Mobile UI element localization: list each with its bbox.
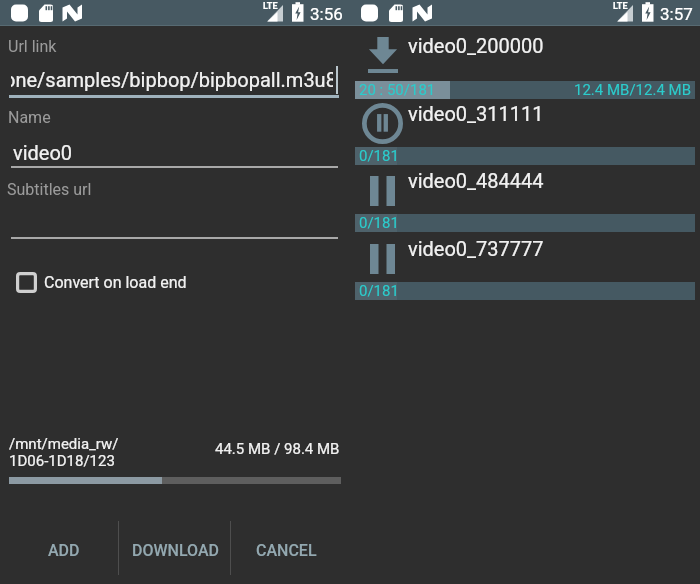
button[interactable]: video0_484444 (350, 159, 700, 193)
staticText: one/samples/bipbop/bipbopall.m3u8 (11, 68, 333, 91)
button[interactable]: video0_200000 (350, 24, 700, 58)
staticText: Name (8, 108, 51, 127)
staticText: LTE (263, 1, 278, 12)
staticText: video0_200000 (408, 34, 544, 57)
staticText: video0 (13, 141, 73, 164)
button[interactable]: video0_737777 (350, 227, 700, 261)
staticText: video0_737777 (408, 237, 544, 260)
button[interactable]: CANCEL (230, 517, 350, 579)
staticText: Convert on load end (44, 273, 187, 292)
staticText: 44.5 MB / 98.4 MB (215, 440, 340, 458)
button[interactable]: video0_311111 (350, 92, 700, 126)
staticText: Subtitles url (7, 180, 92, 199)
staticText: Url link (8, 37, 57, 56)
button[interactable]: ADD (0, 517, 128, 579)
staticText: DOWNLOAD (132, 541, 219, 560)
staticText: 1D06-1D18/123 (9, 452, 115, 470)
staticText: CANCEL (256, 541, 317, 560)
staticText: ADD (48, 541, 80, 560)
staticText: LTE (613, 1, 628, 12)
staticText: 0/181 (359, 147, 399, 165)
staticText: video0_484444 (408, 169, 544, 192)
button[interactable]: Download (368, 37, 398, 73)
staticText: 0/181 (359, 214, 399, 232)
staticText: 3:56 (310, 4, 343, 24)
staticText: 3:57 (660, 4, 693, 24)
staticText: /mnt/media_rw/ (9, 435, 119, 453)
staticText: 0/181 (359, 282, 399, 300)
staticText: video0_311111 (408, 102, 544, 125)
button[interactable]: Pause (370, 176, 395, 206)
button[interactable]: DOWNLOAD (128, 517, 230, 579)
button[interactable]: Pause (362, 103, 403, 144)
staticText: 20 : 50/181 (359, 81, 436, 99)
button[interactable]: Pause (370, 244, 395, 274)
staticText: 12.4 MB/12.4 MB (574, 81, 692, 99)
button[interactable]: Convert on load end (0, 266, 350, 298)
